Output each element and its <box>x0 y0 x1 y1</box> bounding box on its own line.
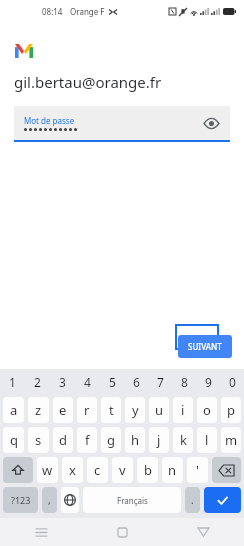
staticText: Français <box>117 495 148 506</box>
staticText: 08:14 <box>42 6 63 17</box>
button[interactable]: f <box>77 427 97 453</box>
staticText: ' <box>196 461 199 479</box>
staticText: t <box>109 401 114 419</box>
staticText: n <box>168 461 177 479</box>
button[interactable]: 3 <box>50 369 75 395</box>
button[interactable]: ?123 <box>3 487 38 513</box>
button[interactable]: t <box>101 397 121 423</box>
staticText: u <box>155 401 164 419</box>
staticText: y <box>132 401 139 419</box>
staticText: SUIVANT <box>188 341 222 352</box>
button[interactable]: m <box>221 427 241 453</box>
button[interactable]: Afficher le mot de passe <box>200 112 222 134</box>
button[interactable]: Valider <box>204 487 241 513</box>
button[interactable]: k <box>173 427 193 453</box>
staticText: Mot de passe <box>24 115 75 126</box>
button[interactable]: Français <box>83 487 181 513</box>
button[interactable]: 2 <box>25 369 50 395</box>
staticText: q <box>10 431 18 449</box>
staticText: 1 <box>9 374 16 390</box>
staticText: 9 <box>205 374 212 390</box>
staticText: e <box>59 401 67 419</box>
staticText: 6 <box>133 374 140 390</box>
button[interactable]: Retour <box>163 518 244 546</box>
button[interactable]: v <box>112 457 133 483</box>
button[interactable]: 0 <box>220 369 244 395</box>
button[interactable]: c <box>87 457 108 483</box>
button[interactable]: . <box>185 487 200 513</box>
staticText: f <box>85 431 90 449</box>
staticText: 0 <box>229 374 236 390</box>
button[interactable]: p <box>221 397 241 423</box>
button[interactable]: 1 <box>0 369 25 395</box>
staticText: gil.bertau@orange.fr <box>14 72 162 92</box>
button[interactable]: 5 <box>100 369 124 395</box>
staticText: x <box>69 461 76 479</box>
staticText: , <box>48 493 51 507</box>
staticText: 7 <box>157 374 164 390</box>
staticText: h <box>131 431 140 449</box>
staticText: a <box>10 401 18 419</box>
button[interactable]: q <box>3 427 24 453</box>
button[interactable]: Mot de passe <box>14 106 230 140</box>
staticText: s <box>35 431 42 449</box>
button[interactable]: SUIVANT <box>178 335 232 358</box>
button[interactable]: Supprimer <box>212 457 241 483</box>
button[interactable]: u <box>149 397 169 423</box>
button[interactable]: Accueil <box>82 518 163 546</box>
staticText: r <box>84 401 90 419</box>
button[interactable]: e <box>53 397 73 423</box>
button[interactable]: 6 <box>124 369 148 395</box>
staticText: c <box>94 461 101 479</box>
button[interactable]: x <box>62 457 83 483</box>
button[interactable]: 4 <box>75 369 100 395</box>
button[interactable]: 9 <box>196 369 220 395</box>
staticText: j <box>157 431 161 449</box>
button[interactable]: n <box>162 457 183 483</box>
staticText: d <box>59 431 67 449</box>
button[interactable]: w <box>37 457 58 483</box>
staticText: ?123 <box>11 494 31 506</box>
button[interactable]: l <box>197 427 217 453</box>
staticText: 8 <box>181 374 188 390</box>
button[interactable]: Changer de langue <box>61 487 79 513</box>
button[interactable]: Applications récentes <box>0 518 82 546</box>
button[interactable]: b <box>137 457 158 483</box>
staticText: . <box>191 493 194 507</box>
staticText: b <box>144 461 152 479</box>
button[interactable]: s <box>28 427 49 453</box>
staticText: i <box>181 401 185 419</box>
button[interactable]: o <box>197 397 217 423</box>
staticText: m <box>225 431 238 449</box>
button[interactable]: r <box>77 397 97 423</box>
button[interactable]: i <box>173 397 193 423</box>
staticText: v <box>119 461 126 479</box>
staticText: w <box>42 461 53 479</box>
staticText: o <box>203 401 211 419</box>
staticText: g <box>107 431 115 449</box>
button[interactable]: h <box>125 427 145 453</box>
staticText: Orange F <box>70 6 105 17</box>
button[interactable]: Majuscule <box>3 457 33 483</box>
button[interactable]: d <box>53 427 73 453</box>
button[interactable]: j <box>149 427 169 453</box>
button[interactable]: a <box>3 397 24 423</box>
button[interactable]: z <box>28 397 49 423</box>
button[interactable]: , <box>42 487 57 513</box>
staticText: 2 <box>34 374 41 390</box>
button[interactable]: y <box>125 397 145 423</box>
button[interactable]: g <box>101 427 121 453</box>
button[interactable]: 7 <box>148 369 172 395</box>
staticText: 5 <box>109 374 116 390</box>
staticText: l <box>205 431 209 449</box>
staticText: k <box>180 431 187 449</box>
staticText: 3 <box>59 374 66 390</box>
staticText: p <box>227 401 235 419</box>
button[interactable]: 8 <box>172 369 196 395</box>
button[interactable]: ' <box>187 457 208 483</box>
staticText: 4 <box>84 374 91 390</box>
staticText: z <box>35 401 42 419</box>
